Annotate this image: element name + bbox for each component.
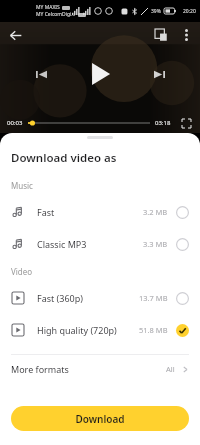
staticText: 3.3 MB [143, 239, 168, 249]
staticText: Video [11, 266, 33, 277]
staticText: Fast (360p) [37, 292, 83, 304]
staticText: 51.8 MB [139, 325, 168, 335]
button[interactable]: Play [80, 54, 120, 94]
staticText: Music [11, 180, 33, 191]
button[interactable]: Fast (360p) [0, 282, 200, 314]
staticText: Classic MP3 [37, 238, 87, 250]
staticText: Download [75, 412, 125, 426]
staticText: 00:03 [7, 119, 23, 127]
button[interactable]: Back [0, 22, 30, 48]
staticText: High quality (720p) [37, 324, 117, 336]
staticText: More formats [11, 363, 69, 375]
staticText: All [166, 364, 175, 374]
staticText: 39% [151, 8, 161, 15]
staticText: Download video as [11, 150, 117, 166]
staticText: 3.2 MB [143, 207, 168, 217]
button[interactable]: More formats [0, 355, 200, 383]
button[interactable]: Download [11, 406, 189, 431]
button[interactable]: Fast [0, 196, 200, 228]
staticText: Fast [37, 206, 55, 218]
button[interactable]: Fullscreen [179, 116, 193, 130]
button[interactable]: Previous [24, 57, 58, 91]
staticText: 20:20 [183, 8, 196, 15]
button[interactable]: Picture in picture [148, 22, 174, 48]
button[interactable]: Next [142, 57, 176, 91]
staticText: 03:18 [155, 119, 171, 127]
staticText: MY MAXIS [36, 4, 60, 11]
staticText: 13.7 MB [139, 293, 168, 303]
button[interactable]: High quality (720p) [0, 314, 200, 346]
button[interactable]: Classic MP3 [0, 228, 200, 260]
staticText: MY CelcomDigi... [36, 11, 76, 18]
button[interactable]: More options [174, 23, 198, 47]
